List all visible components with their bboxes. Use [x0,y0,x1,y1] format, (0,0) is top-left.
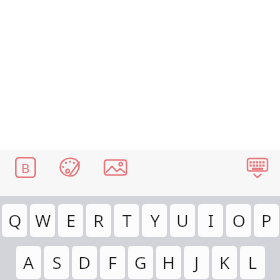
staticText: W [35,209,51,232]
button[interactable]: R [86,204,111,237]
staticText: A [23,251,34,274]
staticText: D [78,251,91,274]
staticText: J [194,251,199,274]
staticText: Q [8,209,22,232]
button[interactable]: Y [142,204,167,237]
button[interactable]: K [212,246,237,279]
staticText: K [219,251,230,274]
staticText: P [261,209,272,232]
button[interactable]: G [128,246,153,279]
button[interactable]: P [254,204,279,237]
staticText: R [93,209,104,232]
button[interactable]: D [72,246,97,279]
staticText: O [232,209,246,232]
button[interactable]: O [226,204,251,237]
staticText: U [176,209,189,232]
button[interactable]: Hide keyboard [240,150,274,184]
button[interactable]: Q [2,204,27,237]
staticText: L [248,251,257,274]
button[interactable]: W [30,204,55,237]
button[interactable]: J [184,246,209,279]
staticText: E [66,209,76,232]
button[interactable]: T [114,204,139,237]
button[interactable]: S [44,246,69,279]
staticText: Y [150,209,160,232]
button[interactable]: E [58,204,83,237]
button[interactable]: I [198,204,223,237]
button[interactable]: L [240,246,265,279]
button[interactable]: A [16,246,41,279]
button[interactable]: U [170,204,195,237]
button[interactable]: Text color [55,152,85,182]
button[interactable]: Bold [10,152,40,182]
staticText: T [122,209,132,232]
button[interactable]: Insert image [100,152,130,182]
staticText: H [162,251,175,274]
staticText: S [52,251,62,274]
staticText: I [208,209,214,232]
button[interactable]: F [100,246,125,279]
staticText: B [21,159,30,177]
staticText: G [134,251,147,274]
staticText: F [108,251,117,274]
button[interactable]: H [156,246,181,279]
